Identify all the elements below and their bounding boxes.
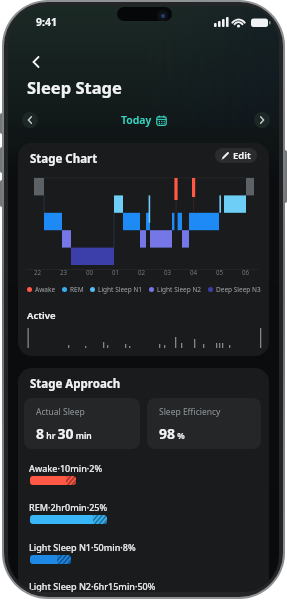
button[interactable]: Today <box>108 111 180 129</box>
staticText: Active <box>27 309 56 322</box>
staticText: 8 hr 30 min <box>36 424 92 443</box>
staticText: 00 <box>86 268 94 276</box>
staticText: REM <box>70 285 84 294</box>
staticText: 22 <box>34 268 42 276</box>
staticText: Edit <box>233 149 251 162</box>
staticText: Sleep Efficiency <box>159 406 221 418</box>
staticText: 02 <box>138 268 146 276</box>
button[interactable]: Edit <box>215 148 257 163</box>
staticText: Stage Chart <box>30 151 98 167</box>
staticText: 23 <box>60 268 68 276</box>
staticText: Awake <box>35 285 56 294</box>
staticText: Light Sleep N2·6hr15min·50% <box>29 580 156 592</box>
staticText: Today <box>121 113 152 127</box>
staticText: 9:41 <box>36 15 57 29</box>
staticText: REM·2hr0min·25% <box>29 501 108 513</box>
staticText: 05 <box>216 268 224 276</box>
staticText: Stage Approach <box>30 376 121 392</box>
staticText: Light Sleep N1 <box>98 285 143 294</box>
staticText: 01 <box>112 268 120 276</box>
staticText: Light Sleep N2 <box>157 285 202 294</box>
staticText: 04 <box>190 268 198 276</box>
staticText: Light Sleep N1·50min·8% <box>29 541 136 553</box>
button[interactable] <box>22 112 38 128</box>
staticText: Actual Sleep <box>36 406 85 418</box>
button[interactable] <box>254 112 270 128</box>
button[interactable] <box>26 52 46 72</box>
staticText: Awake·10min·2% <box>29 462 103 474</box>
staticText: 03 <box>164 268 172 276</box>
staticText: Sleep Stage <box>27 76 122 98</box>
staticText: 98 % <box>159 424 185 443</box>
staticText: 06 <box>242 268 250 276</box>
staticText: Deep Sleep N3 <box>216 285 261 294</box>
